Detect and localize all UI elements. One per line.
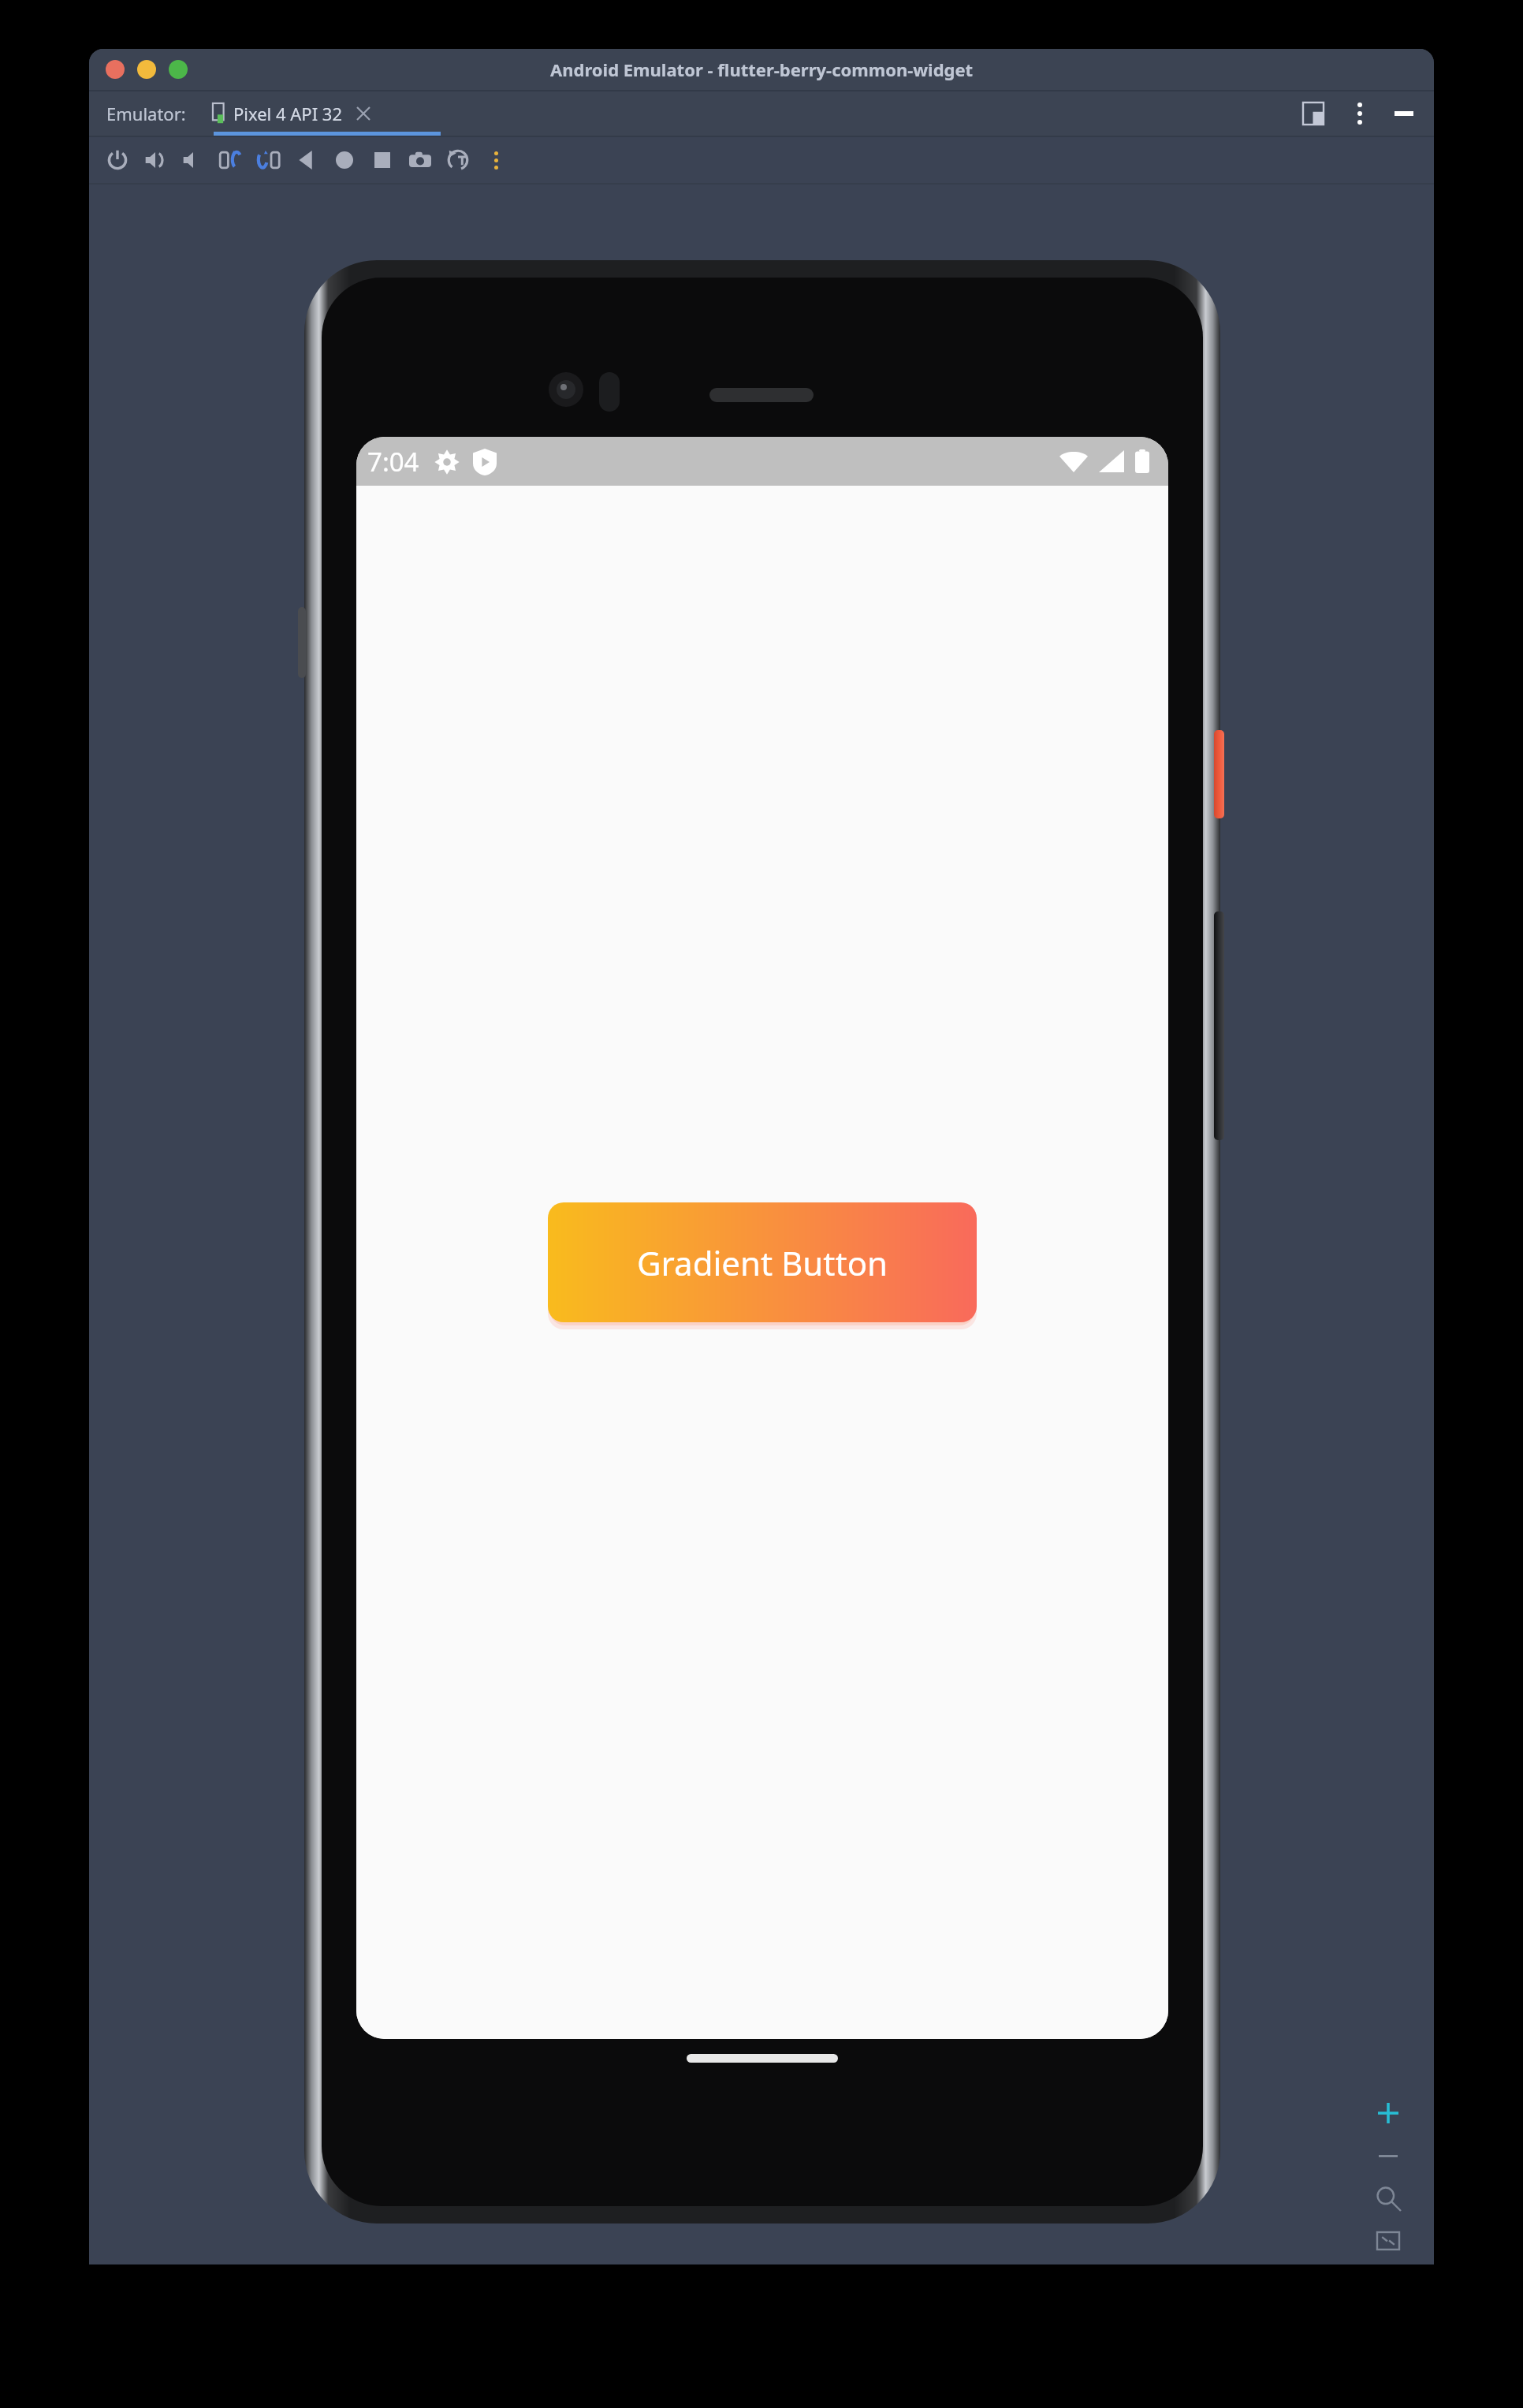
button[interactable]: Zoom out	[1368, 2135, 1409, 2176]
button[interactable]: Rotate left	[212, 141, 250, 179]
staticText: Emulator:	[106, 102, 186, 125]
button[interactable]: Overview	[363, 141, 401, 179]
button[interactable]: Power	[99, 141, 136, 179]
button[interactable]: Zoom in	[1366, 2091, 1410, 2135]
button[interactable]: Gradient Button	[548, 1202, 977, 1322]
button[interactable]: Snap window	[1295, 95, 1331, 132]
button[interactable]: More	[477, 141, 515, 179]
button[interactable]: Rotate right	[250, 141, 288, 179]
button[interactable]: Screenshot	[401, 141, 439, 179]
button[interactable]: Window control	[106, 60, 125, 79]
button[interactable]: Home	[326, 141, 363, 179]
button[interactable]: Volume down	[174, 141, 212, 179]
button[interactable]: Pixel 4 API 32	[210, 102, 373, 125]
button[interactable]: Volume button	[1214, 911, 1224, 1140]
button[interactable]: Window control	[137, 60, 156, 79]
button[interactable]: Back	[288, 141, 326, 179]
button[interactable]: Rewind	[439, 141, 477, 179]
button[interactable]: Window control	[169, 60, 188, 79]
button[interactable]: Minimize	[1388, 98, 1420, 129]
staticText: Gradient Button	[637, 1240, 888, 1285]
button[interactable]: Fit to screen	[1368, 2220, 1409, 2261]
button[interactable]: Actual size	[1366, 2176, 1410, 2220]
staticText: 7:04	[367, 444, 419, 479]
button[interactable]: Power button	[1214, 730, 1224, 818]
button[interactable]: Close tab	[354, 104, 373, 123]
button[interactable]: More options	[1344, 98, 1376, 129]
button[interactable]: Volume up	[136, 141, 174, 179]
staticText: Android Emulator - flutter-berry-common-…	[550, 58, 974, 81]
staticText: Pixel 4 API 32	[233, 102, 343, 125]
